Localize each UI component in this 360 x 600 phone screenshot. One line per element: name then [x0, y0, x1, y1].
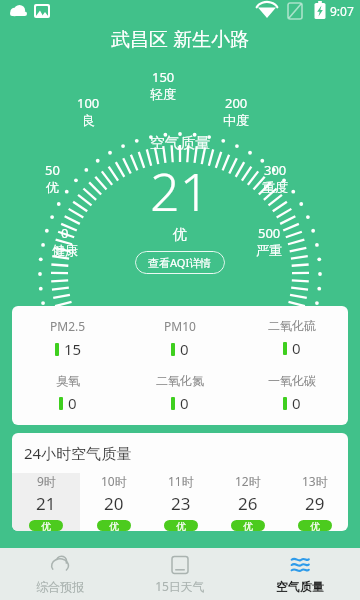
- staticText: 21: [150, 155, 210, 226]
- staticText: 严重: [256, 242, 282, 258]
- staticText: 二氧化硫: [268, 318, 316, 333]
- staticText: 良: [82, 112, 95, 128]
- staticText: 11时: [168, 473, 194, 489]
- staticText: 二氧化氮: [156, 373, 204, 388]
- button[interactable]: 12时: [214, 473, 281, 531]
- staticText: 空气质量: [150, 134, 210, 153]
- button[interactable]: 13时: [281, 473, 348, 531]
- staticText: 0: [68, 393, 77, 413]
- staticText: 150: [152, 68, 175, 86]
- staticText: 一氧化碳: [268, 373, 316, 388]
- staticText: 24小时空气质量: [24, 443, 132, 463]
- button[interactable]: 15日天气: [120, 548, 240, 600]
- staticText: 轻度: [150, 86, 176, 102]
- staticText: 重度: [262, 179, 288, 195]
- staticText: 200: [225, 94, 248, 112]
- staticText: 优: [109, 520, 119, 531]
- button[interactable]: 空气质量: [240, 548, 360, 600]
- staticText: 20: [104, 492, 124, 515]
- staticText: 武昌区 新生小路: [111, 26, 249, 52]
- staticText: 优: [173, 226, 187, 244]
- staticText: 优: [310, 520, 320, 531]
- staticText: 15日天气: [155, 578, 205, 594]
- staticText: 0: [180, 339, 189, 359]
- staticText: 综合预报: [36, 579, 84, 594]
- staticText: 0: [180, 393, 189, 413]
- staticText: 50: [45, 161, 60, 179]
- staticText: 空气质量: [276, 579, 324, 594]
- staticText: PM10: [164, 318, 196, 334]
- staticText: 中度: [223, 112, 249, 128]
- button[interactable]: PM2.5: [12, 306, 348, 425]
- staticText: PM2.5: [50, 318, 86, 334]
- button[interactable]: 10时: [80, 473, 147, 531]
- button[interactable]: 9时: [12, 473, 80, 531]
- staticText: 21: [36, 492, 56, 515]
- staticText: 0: [292, 338, 301, 358]
- staticText: 26: [238, 492, 258, 515]
- staticText: 查看AQI详情: [148, 255, 212, 270]
- staticText: 优: [41, 520, 51, 531]
- staticText: 0: [61, 224, 69, 242]
- staticText: 优: [176, 520, 186, 531]
- staticText: 13时: [302, 473, 328, 489]
- staticText: 10时: [101, 473, 127, 489]
- staticText: 优: [243, 520, 253, 531]
- button[interactable]: 11时: [147, 473, 214, 531]
- staticText: 优: [46, 179, 59, 195]
- staticText: 300: [264, 161, 287, 179]
- staticText: 15: [64, 339, 82, 359]
- staticText: 臭氧: [56, 373, 80, 388]
- staticText: 9:07: [330, 3, 354, 19]
- staticText: 0: [292, 393, 301, 413]
- staticText: 29: [305, 492, 325, 515]
- staticText: 23: [171, 492, 191, 515]
- staticText: 9时: [37, 473, 56, 489]
- staticText: 500: [258, 224, 281, 242]
- button[interactable]: 综合预报: [0, 548, 120, 600]
- button[interactable]: 查看AQI详情: [135, 251, 225, 274]
- staticText: 健康: [52, 242, 78, 258]
- staticText: 12时: [235, 473, 261, 489]
- staticText: 100: [77, 94, 100, 112]
